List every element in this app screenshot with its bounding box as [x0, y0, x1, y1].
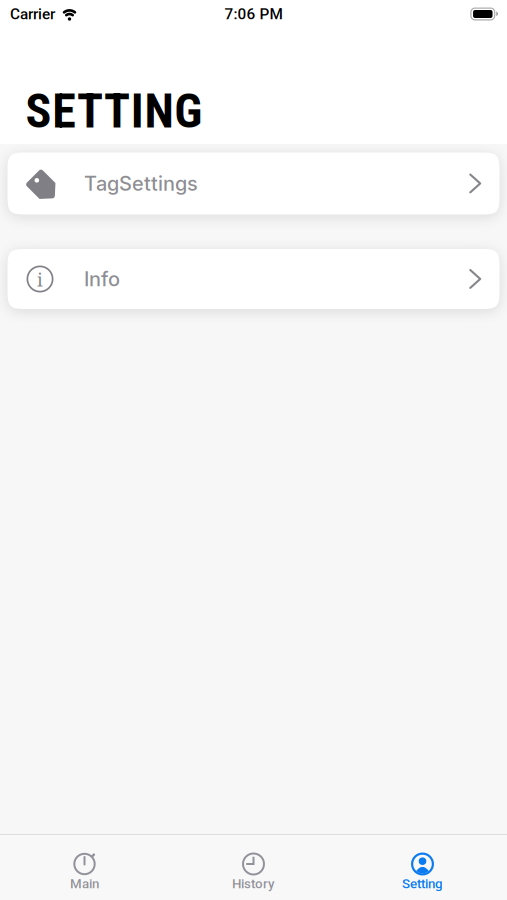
staticText: Info [84, 267, 120, 291]
staticText: Main [70, 876, 99, 892]
button[interactable]: i [7, 249, 499, 309]
staticText: i [37, 267, 43, 292]
button[interactable]: History [169, 848, 338, 892]
button[interactable]: Setting [338, 848, 507, 892]
staticText: TagSettings [84, 171, 198, 196]
staticText: Carrier [10, 5, 55, 23]
staticText: SETTING [25, 83, 202, 139]
staticText: 7:06 PM [224, 5, 282, 23]
button[interactable]: Main [0, 848, 169, 892]
staticText: History [232, 876, 275, 892]
staticText: Setting [402, 876, 443, 892]
button[interactable]: TagSettings [7, 152, 499, 214]
